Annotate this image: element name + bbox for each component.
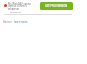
- button[interactable]: learn more: [14, 20, 28, 24]
- button[interactable]: Alert: [4, 4, 7, 7]
- staticText: GET PRO VERSION: [45, 4, 68, 8]
- staticText: Banner: [3, 20, 12, 24]
- staticText: answered: [10, 10, 21, 13]
- button[interactable]: GET PRO VERSION: [40, 2, 73, 10]
- staticText: My WebDAV canno cannot connect whatever: [8, 2, 31, 11]
